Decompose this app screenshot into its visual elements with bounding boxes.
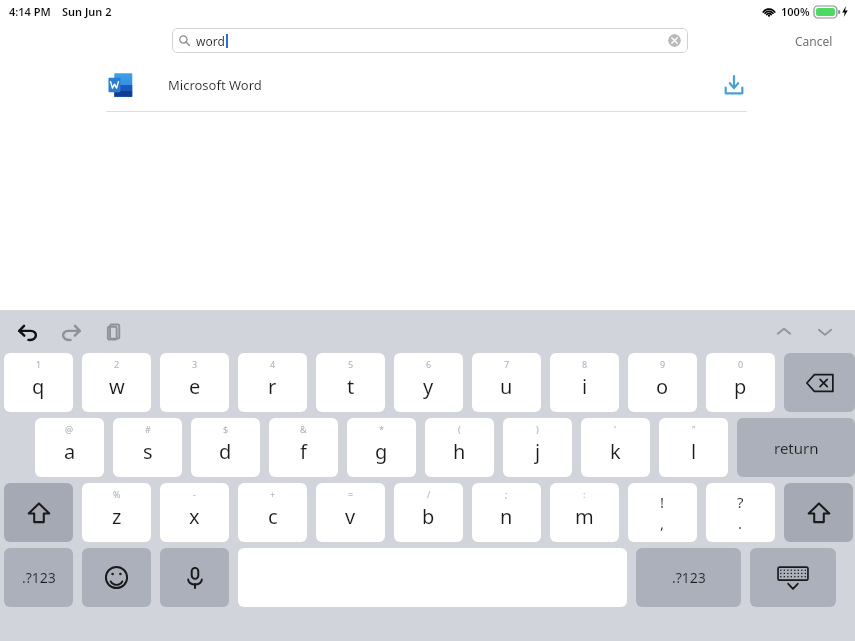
button[interactable]: 7 <box>472 353 541 412</box>
staticText: 8 <box>582 358 588 370</box>
staticText: x <box>189 503 200 530</box>
button[interactable]: 4 <box>238 353 307 412</box>
staticText: d <box>219 438 232 465</box>
button[interactable]: .?123 <box>636 548 741 607</box>
button[interactable]: ( <box>425 418 494 477</box>
staticText: 7 <box>504 358 510 370</box>
staticText: 0 <box>738 358 744 370</box>
button[interactable] <box>784 353 855 412</box>
button[interactable]: ) <box>503 418 572 477</box>
button[interactable]: ? <box>706 483 775 542</box>
staticText: s <box>143 438 153 465</box>
staticText: % <box>113 488 121 500</box>
button[interactable]: ; <box>472 483 541 542</box>
staticText: ( <box>458 423 461 435</box>
staticText: ? <box>737 492 744 512</box>
button[interactable]: / <box>394 483 463 542</box>
staticText: v <box>345 503 356 530</box>
staticText: c <box>268 503 278 530</box>
staticText: q <box>32 373 45 400</box>
staticText: - <box>193 488 196 500</box>
button[interactable]: .?123 <box>4 548 73 607</box>
button[interactable]: ! <box>628 483 697 542</box>
staticText: g <box>375 438 388 465</box>
button[interactable]: 0 <box>706 353 775 412</box>
staticText: 100% <box>781 4 810 19</box>
staticText: e <box>189 373 201 400</box>
button[interactable]: Clear search <box>668 34 681 47</box>
staticText: $ <box>223 423 229 435</box>
button[interactable]: Redo <box>57 318 85 346</box>
button[interactable]: 2 <box>82 353 151 412</box>
staticText: z <box>112 503 122 530</box>
staticText: , <box>660 513 665 533</box>
button[interactable]: - <box>160 483 229 542</box>
button[interactable]: Emoji <box>82 548 151 607</box>
staticText: 4:14 PM <box>9 4 51 19</box>
button[interactable]: $ <box>191 418 260 477</box>
button[interactable]: : <box>550 483 619 542</box>
staticText: y <box>423 373 434 400</box>
button[interactable]: # <box>113 418 182 477</box>
staticText: * <box>379 423 384 435</box>
button[interactable]: Cancel <box>791 29 837 53</box>
button[interactable]: @ <box>35 418 104 477</box>
button[interactable]: Paste <box>100 318 128 346</box>
staticText: o <box>656 373 669 400</box>
button[interactable]: " <box>659 418 728 477</box>
staticText: Sun Jun 2 <box>62 4 112 19</box>
staticText: w <box>109 373 125 400</box>
button[interactable]: % <box>82 483 151 542</box>
button[interactable]: Shift <box>784 483 853 542</box>
staticText: ; <box>505 488 508 500</box>
staticText: m <box>575 503 594 530</box>
button[interactable]: 5 <box>316 353 385 412</box>
button[interactable]: 6 <box>394 353 463 412</box>
staticText: b <box>422 503 435 530</box>
staticText: f <box>300 438 307 465</box>
staticText: Microsoft Word <box>168 76 262 94</box>
staticText: 5 <box>348 358 354 370</box>
staticText: 3 <box>192 358 198 370</box>
staticText: @ <box>65 423 74 435</box>
staticText: i <box>582 373 588 400</box>
staticText: " <box>692 423 696 435</box>
staticText: ) <box>536 423 539 435</box>
button[interactable]: Download Microsoft Word <box>721 72 747 98</box>
button[interactable]: 8 <box>550 353 619 412</box>
button[interactable]: * <box>347 418 416 477</box>
button[interactable]: word <box>172 28 688 53</box>
button[interactable]: Previous <box>770 318 798 346</box>
staticText: h <box>453 438 466 465</box>
button[interactable]: & <box>269 418 338 477</box>
button[interactable]: = <box>316 483 385 542</box>
staticText: & <box>300 423 307 435</box>
button[interactable]: Undo <box>14 318 42 346</box>
button[interactable]: 3 <box>160 353 229 412</box>
button[interactable]: Dictation <box>160 548 229 607</box>
staticText: / <box>427 488 431 500</box>
button[interactable]: Shift <box>4 483 73 542</box>
staticText: . <box>738 513 743 533</box>
staticText: 9 <box>660 358 666 370</box>
staticText: + <box>270 488 276 500</box>
staticText: word <box>196 33 225 49</box>
button[interactable]: 9 <box>628 353 697 412</box>
staticText: j <box>535 438 541 465</box>
staticText: # <box>145 423 151 435</box>
staticText: 4 <box>270 358 276 370</box>
button[interactable]: ' <box>581 418 650 477</box>
button[interactable]: Hide keyboard <box>750 548 836 607</box>
staticText: Cancel <box>795 33 833 49</box>
staticText: = <box>348 488 354 500</box>
button[interactable]: Next <box>811 318 839 346</box>
button[interactable]: 1 <box>4 353 73 412</box>
button[interactable]: + <box>238 483 307 542</box>
button[interactable]: return <box>737 418 855 477</box>
staticText: p <box>734 373 747 400</box>
button[interactable]: Microsoft Word <box>106 59 747 111</box>
staticText: 6 <box>426 358 432 370</box>
staticText: 1 <box>36 358 42 370</box>
staticText: 2 <box>114 358 120 370</box>
